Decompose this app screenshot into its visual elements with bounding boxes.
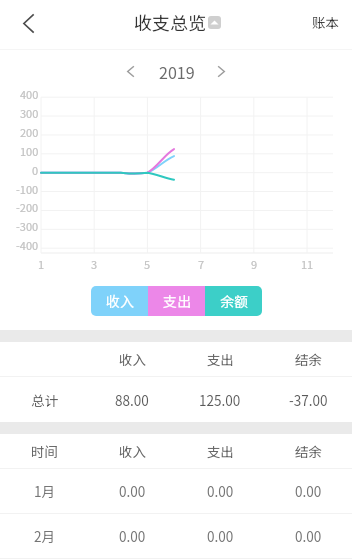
staticText: 余额 [220, 291, 248, 311]
staticText: -300 [16, 218, 39, 232]
staticText: 400 [20, 91, 39, 100]
button[interactable]: Previous year [117, 58, 144, 85]
staticText: 总计 [31, 390, 58, 410]
button[interactable]: 收入 [0, 342, 352, 376]
staticText: 0 [32, 162, 39, 176]
button[interactable]: 支出 [148, 286, 205, 316]
staticText: 收入 [119, 349, 146, 369]
staticText: -200 [16, 199, 39, 213]
staticText: 时间 [31, 441, 58, 461]
staticText: 300 [20, 105, 39, 119]
staticText: 支出 [207, 349, 234, 369]
staticText: 账本 [312, 12, 339, 32]
button[interactable]: 2月 [0, 514, 352, 558]
staticText: 0.00 [207, 481, 234, 501]
staticText: 1月 [34, 481, 55, 501]
staticText: 7 [198, 256, 205, 270]
button[interactable]: 总计 [0, 377, 352, 422]
button[interactable]: 时间 [0, 434, 352, 468]
staticText: 125.00 [199, 390, 241, 410]
button[interactable]: Next year [208, 58, 235, 85]
staticText: 1 [38, 256, 45, 270]
staticText: 结余 [295, 349, 322, 369]
staticText: -100 [16, 181, 39, 195]
button[interactable]: Back [10, 5, 46, 41]
staticText: 100 [20, 143, 39, 157]
staticText: 结余 [295, 441, 322, 461]
staticText: 0.00 [119, 526, 146, 546]
staticText: 2月 [34, 526, 55, 546]
staticText: 支出 [207, 441, 234, 461]
staticText: 3 [91, 256, 98, 270]
staticText: 11 [301, 256, 314, 270]
staticText: 0.00 [295, 481, 322, 501]
staticText: 支出 [163, 291, 191, 311]
staticText: 2019 [159, 60, 195, 83]
staticText: -400 [16, 237, 39, 251]
staticText: 0.00 [119, 481, 146, 501]
staticText: 0.00 [295, 526, 322, 546]
staticText: 收入 [119, 441, 146, 461]
staticText: -37.00 [289, 390, 328, 410]
button[interactable]: 账本 [312, 12, 339, 32]
button[interactable]: 1月 [0, 469, 352, 513]
button[interactable]: 余额 [205, 286, 262, 316]
staticText: 5 [144, 256, 151, 270]
button[interactable]: 收入 [91, 286, 148, 316]
staticText: 9 [251, 256, 258, 270]
staticText: 收入 [106, 291, 134, 311]
staticText: 200 [20, 124, 39, 138]
staticText: 88.00 [115, 390, 149, 410]
staticText: 0.00 [207, 526, 234, 546]
staticText: 收支总览 [134, 9, 206, 35]
